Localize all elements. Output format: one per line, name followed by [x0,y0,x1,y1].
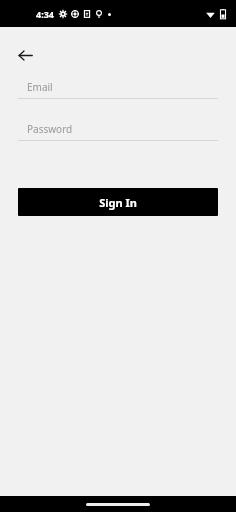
button[interactable]: Password [18,118,218,141]
button[interactable]: Sign In [18,188,218,216]
staticText: 4:34 [36,8,54,20]
staticText: Sign In [99,195,137,210]
staticText: Email [27,80,53,94]
button[interactable]: Back [11,41,40,70]
button[interactable]: Email [18,76,218,99]
staticText: Password [27,122,73,136]
